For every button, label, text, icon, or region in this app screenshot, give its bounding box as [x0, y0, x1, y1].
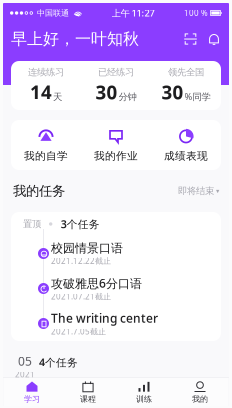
button[interactable]: 校园情景口语 — [11, 236, 221, 271]
button[interactable]: 成绩表现 — [151, 120, 221, 170]
staticText: 30 — [95, 80, 117, 105]
staticText: 我的作业 — [94, 149, 138, 162]
button[interactable]: The writing center — [11, 306, 221, 341]
staticText: 攻破雅思6分口语 — [51, 275, 142, 291]
button[interactable]: 扫一扫 — [184, 32, 197, 45]
button[interactable]: 训练 — [116, 378, 172, 406]
staticText: 3个任务 — [61, 217, 100, 231]
staticText: 领先全国 — [168, 66, 204, 78]
staticText: 成绩表现 — [164, 149, 208, 162]
staticText: 天 — [53, 91, 62, 103]
button[interactable]: 消息通知 — [208, 32, 220, 45]
button[interactable]: 课程 — [60, 378, 116, 406]
staticText: 05 — [18, 353, 32, 369]
button[interactable]: 我的作业 — [81, 120, 151, 170]
staticText: 早上好，一叶知秋 — [11, 29, 139, 49]
staticText: 我的任务 — [13, 183, 65, 199]
staticText: 4个任务 — [39, 355, 78, 369]
staticText: 训练 — [136, 394, 152, 404]
button[interactable]: 我的 — [172, 378, 228, 406]
button[interactable]: 学习 — [4, 378, 60, 406]
staticText: 2021.7.05截止 — [51, 326, 106, 337]
staticText: 2021.07.21截止 — [51, 291, 111, 302]
button[interactable]: 我的自学 — [11, 120, 81, 170]
staticText: ▾ — [216, 187, 219, 195]
button[interactable]: 即将结束 — [178, 185, 219, 197]
staticText: 14 — [30, 80, 52, 105]
staticText: 课程 — [80, 394, 96, 404]
staticText: 我的 — [192, 394, 208, 404]
staticText: 即将结束 — [178, 185, 214, 197]
staticText: 分钟 — [118, 91, 136, 103]
staticText: 学习 — [24, 394, 40, 404]
staticText: 已经练习 — [98, 66, 134, 78]
staticText: 上午 11:27 — [111, 7, 154, 19]
staticText: %同学 — [184, 90, 210, 103]
staticText: 校园情景口语 — [51, 241, 123, 255]
staticText: 100 % — [184, 8, 208, 18]
staticText: 我的自学 — [24, 149, 68, 162]
staticText: 中国联通 — [37, 8, 69, 18]
staticText: 30 — [161, 80, 183, 105]
staticText: 连续练习 — [28, 66, 64, 78]
staticText: The writing center — [51, 310, 158, 326]
staticText: 2021.12.22截止 — [51, 256, 111, 266]
staticText: 置顶 — [23, 218, 41, 230]
staticText: 2021 — [15, 369, 35, 380]
button[interactable]: 攻破雅思6分口语 — [11, 271, 221, 306]
